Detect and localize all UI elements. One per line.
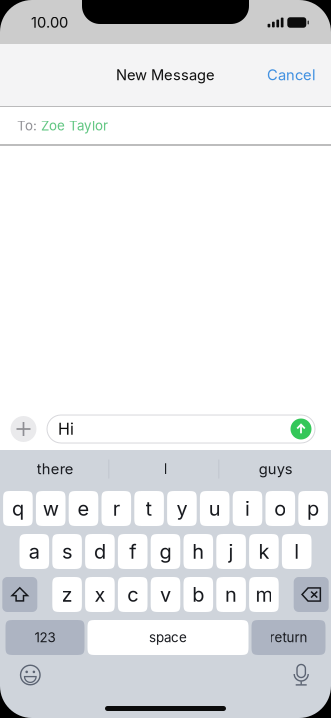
staticText: l xyxy=(294,539,299,564)
button[interactable]: Send xyxy=(290,418,311,439)
button[interactable]: f xyxy=(118,534,147,569)
staticText: return xyxy=(269,629,307,645)
button[interactable]: k xyxy=(249,534,279,569)
button[interactable]: guys xyxy=(221,450,331,488)
staticText: I xyxy=(163,460,167,478)
staticText: y xyxy=(176,496,187,521)
staticText: k xyxy=(258,539,269,564)
staticText: s xyxy=(62,539,72,564)
staticText: a xyxy=(29,539,40,564)
button[interactable]: l xyxy=(282,534,311,569)
staticText: there xyxy=(37,460,74,478)
staticText: z xyxy=(62,582,73,607)
staticText: 123 xyxy=(34,629,55,645)
button[interactable]: Cancel xyxy=(260,57,323,93)
staticText: To: xyxy=(17,118,37,134)
button[interactable]: r xyxy=(101,491,131,526)
staticText: n xyxy=(225,582,237,607)
staticText: guys xyxy=(259,460,293,478)
staticText: j xyxy=(229,539,234,564)
button[interactable]: e xyxy=(69,491,98,526)
button[interactable]: u xyxy=(200,491,229,526)
button[interactable]: s xyxy=(52,534,82,569)
staticText: q xyxy=(12,496,24,521)
button[interactable]: Add attachment xyxy=(10,416,36,442)
button[interactable]: m xyxy=(249,577,279,612)
staticText: x xyxy=(94,582,105,607)
button[interactable]: Dictate xyxy=(286,658,317,691)
button[interactable]: space xyxy=(87,620,248,655)
button[interactable]: w xyxy=(36,491,65,526)
staticText: Zoe Taylor xyxy=(41,118,108,134)
button[interactable]: To: xyxy=(0,107,331,145)
button[interactable]: a xyxy=(19,534,49,569)
button[interactable]: i xyxy=(233,491,262,526)
staticText: t xyxy=(146,496,153,521)
staticText: New Message xyxy=(116,66,215,84)
button[interactable]: p xyxy=(298,491,328,526)
button[interactable]: j xyxy=(216,534,246,569)
button[interactable]: return xyxy=(251,620,325,655)
button[interactable]: 123 xyxy=(5,620,84,655)
staticText: b xyxy=(192,582,204,607)
button[interactable]: x xyxy=(85,577,115,612)
button[interactable]: h xyxy=(183,534,213,569)
staticText: 10.00 xyxy=(31,14,68,31)
staticText: i xyxy=(245,496,250,521)
button[interactable]: b xyxy=(183,577,213,612)
staticText: o xyxy=(274,496,286,521)
staticText: v xyxy=(160,582,171,607)
button[interactable]: t xyxy=(134,491,164,526)
button[interactable]: Emoji keyboard xyxy=(14,659,46,691)
button[interactable]: g xyxy=(151,534,180,569)
button[interactable]: z xyxy=(52,577,82,612)
staticText: Hi xyxy=(58,419,74,439)
button[interactable]: Shift xyxy=(2,577,37,612)
staticText: m xyxy=(255,582,272,607)
staticText: u xyxy=(209,496,221,521)
button[interactable]: d xyxy=(85,534,115,569)
button[interactable]: v xyxy=(151,577,180,612)
button[interactable]: Delete xyxy=(294,577,329,612)
button[interactable]: q xyxy=(3,491,33,526)
staticText: p xyxy=(307,496,319,521)
button[interactable]: n xyxy=(216,577,246,612)
button[interactable]: y xyxy=(167,491,197,526)
staticText: w xyxy=(43,496,59,521)
staticText: g xyxy=(159,539,171,564)
staticText: d xyxy=(94,539,106,564)
staticText: c xyxy=(127,582,138,607)
button[interactable]: I xyxy=(110,450,221,488)
staticText: h xyxy=(192,539,204,564)
button[interactable]: c xyxy=(118,577,147,612)
button[interactable]: o xyxy=(265,491,295,526)
staticText: Cancel xyxy=(267,66,316,84)
staticText: e xyxy=(77,496,89,521)
button[interactable]: there xyxy=(0,450,110,488)
staticText: space xyxy=(149,629,187,645)
staticText: r xyxy=(113,496,120,521)
staticText: f xyxy=(129,539,136,564)
